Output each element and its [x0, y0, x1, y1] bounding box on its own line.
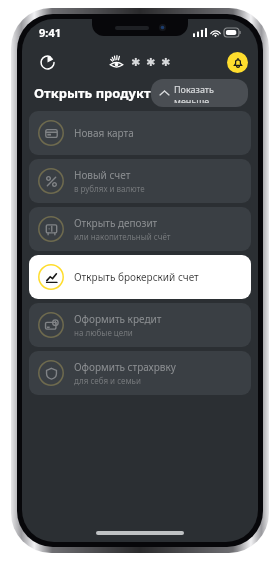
button[interactable]: Открыть депозит: [29, 207, 251, 251]
staticText: Открыть депозит: [74, 216, 158, 230]
button[interactable]: Новый счет: [29, 159, 251, 203]
button[interactable]: Уведомления: [227, 52, 248, 73]
staticText: Новая карта: [74, 126, 134, 140]
staticText: для себя и семьи: [74, 375, 141, 386]
staticText: Показать меньше: [174, 83, 237, 103]
staticText: ✱: [161, 56, 171, 69]
button[interactable]: Расходы: [33, 48, 61, 76]
staticText: или накопительный счёт: [74, 231, 171, 242]
button[interactable]: Оформить кредит: [29, 303, 251, 347]
button[interactable]: ✱: [105, 53, 175, 72]
staticText: на любые цели: [74, 327, 133, 338]
staticText: 9:41: [39, 25, 61, 40]
staticText: в рублях и валюте: [74, 183, 145, 194]
button[interactable]: Показать меньше: [151, 79, 248, 107]
staticText: Новый счет: [74, 168, 131, 182]
staticText: Оформить кредит: [74, 312, 162, 326]
staticText: Открыть продукт: [34, 84, 151, 102]
staticText: ✱: [146, 56, 156, 69]
staticText: Открыть брокерский счет: [74, 270, 199, 284]
button[interactable]: Оформить страхрвку: [29, 351, 251, 395]
button[interactable]: Новая карта: [29, 111, 251, 155]
button[interactable]: Открыть брокерский счет: [29, 255, 251, 299]
staticText: Оформить страхрвку: [74, 360, 176, 374]
staticText: ✱: [131, 56, 141, 69]
